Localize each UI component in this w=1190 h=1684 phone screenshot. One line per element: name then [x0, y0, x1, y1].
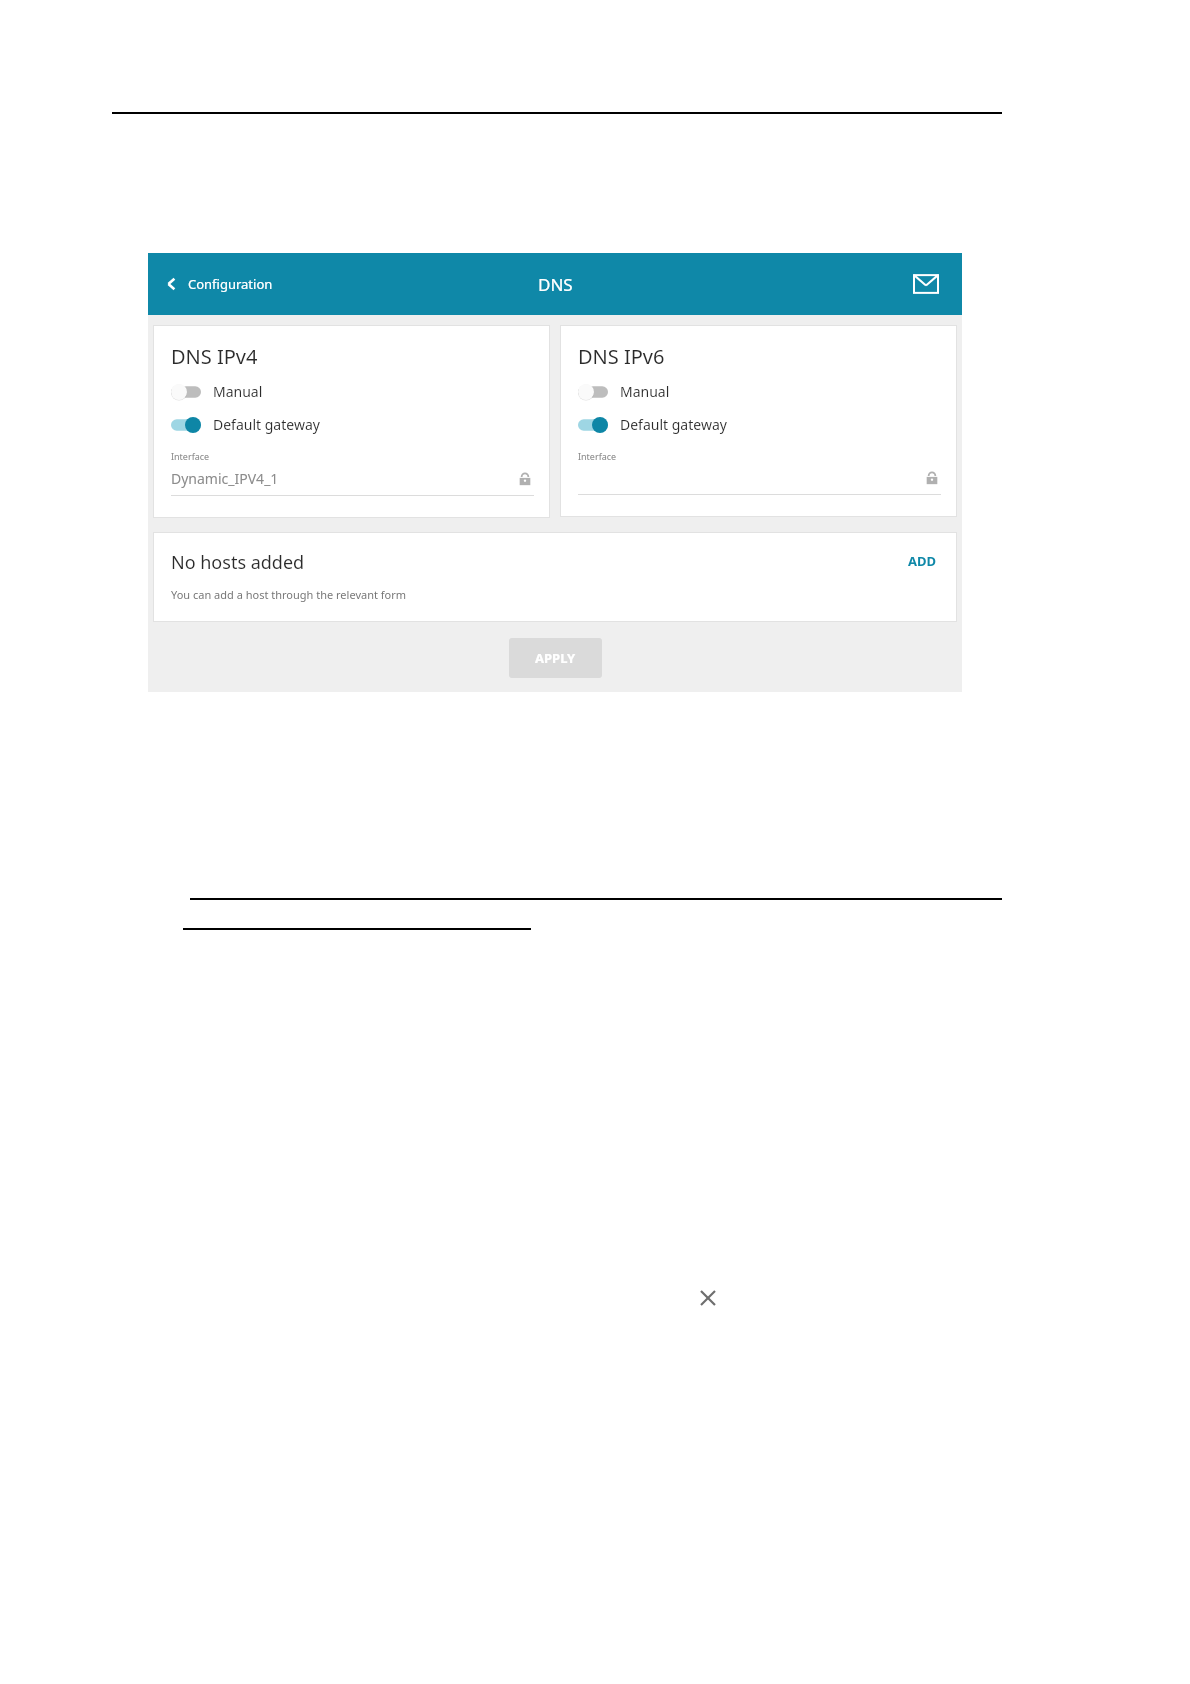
staticText: Interface	[171, 450, 210, 462]
button[interactable]: Default gateway	[171, 415, 320, 434]
staticText: Manual	[620, 382, 670, 401]
button[interactable]: Default gateway	[578, 415, 727, 434]
staticText: Dynamic_IPV4_1	[171, 469, 279, 488]
other: Locked	[516, 470, 534, 488]
button[interactable]: APPLY	[509, 638, 602, 678]
button[interactable]: Manual	[171, 382, 263, 401]
other: Locked	[923, 469, 941, 487]
staticText: Interface	[578, 450, 617, 462]
staticText: You can add a host through the relevant …	[171, 587, 407, 602]
staticText: Default gateway	[213, 415, 320, 434]
button[interactable]: Messages	[906, 264, 946, 304]
button[interactable]: Manual	[578, 382, 670, 401]
staticText: DNS	[538, 273, 573, 296]
staticText: ADD	[908, 552, 937, 570]
staticText: DNS IPv6	[578, 343, 665, 370]
staticText: Default gateway	[620, 415, 727, 434]
staticText: No hosts added	[171, 550, 305, 575]
button[interactable]: Configuration	[162, 274, 273, 294]
staticText: Configuration	[188, 275, 273, 293]
button[interactable]: Close	[694, 1284, 722, 1312]
button[interactable]: ADD	[894, 544, 951, 578]
staticText: APPLY	[535, 649, 576, 667]
staticText: DNS IPv4	[171, 343, 258, 370]
staticText: Manual	[213, 382, 263, 401]
